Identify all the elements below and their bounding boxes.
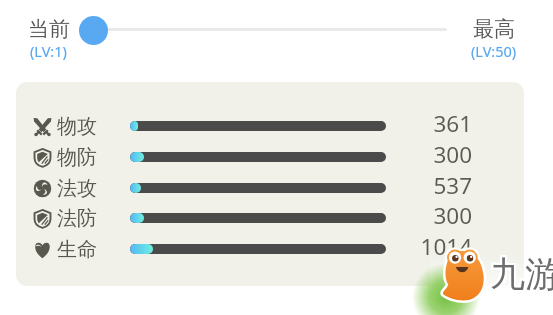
staticText: 当前 [28, 16, 70, 42]
staticText: 九游 [488, 252, 553, 296]
staticText: 九游 [488, 250, 553, 294]
staticText: 九游 [488, 254, 553, 298]
staticText: 九游 [492, 252, 553, 296]
button[interactable]: 法防 300 [16, 207, 524, 237]
staticText: 生命 [57, 237, 97, 262]
staticText: 九游 [490, 251, 553, 295]
staticText: 九游 [489, 252, 553, 296]
staticText: 九游 [490, 250, 553, 294]
staticText: (LV:50) [471, 41, 517, 61]
button[interactable]: 生命 1014 [16, 238, 524, 268]
staticText: 九游 [489, 254, 553, 298]
button[interactable]: 物防 300 [16, 146, 524, 176]
staticText: 361 [386, 108, 472, 138]
staticText: 最高 [473, 16, 515, 42]
staticText: 九游 [491, 252, 553, 296]
button[interactable]: Level slider, level 1 of 50 [79, 14, 447, 46]
staticText: 537 [386, 170, 472, 200]
staticText: 九游 [491, 250, 553, 294]
staticText: 九游 [489, 253, 553, 297]
staticText: 九游 [488, 253, 553, 297]
staticText: 法防 [57, 206, 97, 231]
staticText: 九游 [491, 251, 553, 295]
button[interactable]: 物攻 361 [16, 115, 524, 145]
staticText: 300 [386, 200, 472, 230]
staticText: 九游 [492, 254, 553, 298]
staticText: 九游 [490, 254, 553, 298]
staticText: 九游 [490, 252, 553, 296]
staticText: 九游 [491, 253, 553, 297]
button[interactable]: 法攻 537 [16, 177, 524, 207]
staticText: 法攻 [57, 176, 97, 201]
staticText: (LV:1) [30, 41, 67, 61]
staticText: 九游 [489, 250, 553, 294]
staticText: 九游 [492, 253, 553, 297]
staticText: 九游 [492, 250, 553, 294]
staticText: 物攻 [57, 114, 97, 139]
staticText: 九游 [491, 254, 553, 298]
staticText: 1014 [386, 231, 472, 261]
staticText: 九游 [490, 253, 553, 297]
staticText: 物防 [57, 145, 97, 170]
staticText: 九游 [489, 251, 553, 295]
staticText: 300 [386, 139, 472, 169]
staticText: 九游 [488, 251, 553, 295]
staticText: 九游 [492, 251, 553, 295]
